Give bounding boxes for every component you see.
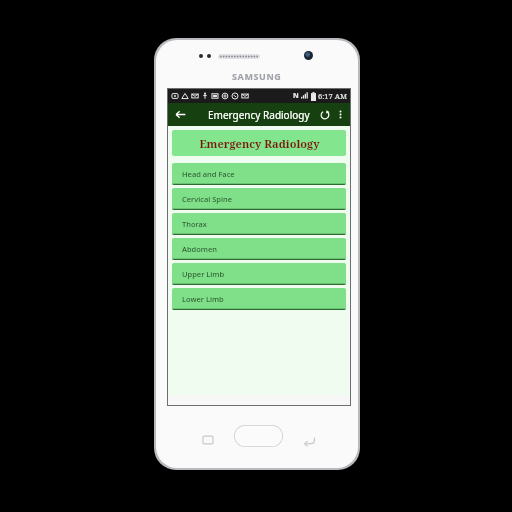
staticText: N bbox=[293, 91, 299, 101]
staticText: Emergency Radiology bbox=[208, 108, 310, 122]
staticText: Lower Limb bbox=[182, 294, 224, 304]
staticText: SAMSUNG bbox=[232, 70, 282, 82]
staticText: Thorax bbox=[182, 219, 207, 229]
staticText: Upper Limb bbox=[182, 269, 225, 279]
button[interactable]: Home bbox=[234, 425, 283, 447]
button[interactable]: Cervical Spine bbox=[172, 188, 346, 210]
staticText: Cervical Spine bbox=[182, 194, 232, 204]
button[interactable]: Thorax bbox=[172, 213, 346, 235]
button[interactable]: More options bbox=[333, 107, 348, 122]
staticText: 6:17 AM bbox=[318, 91, 347, 101]
staticText: Emergency Radiology bbox=[199, 136, 320, 151]
button[interactable]: Recent apps bbox=[197, 429, 219, 451]
button[interactable]: Back bbox=[298, 429, 320, 451]
button[interactable]: Head and Face bbox=[172, 163, 346, 185]
button[interactable]: Upper Limb bbox=[172, 263, 346, 285]
staticText: Abdomen bbox=[182, 244, 217, 254]
button[interactable]: Emergency Radiology bbox=[172, 130, 346, 156]
button[interactable]: Navigate up bbox=[172, 106, 189, 123]
staticText: Head and Face bbox=[182, 169, 235, 179]
button[interactable]: Lower Limb bbox=[172, 288, 346, 310]
button[interactable]: Refresh bbox=[316, 106, 333, 123]
button[interactable]: Abdomen bbox=[172, 238, 346, 260]
